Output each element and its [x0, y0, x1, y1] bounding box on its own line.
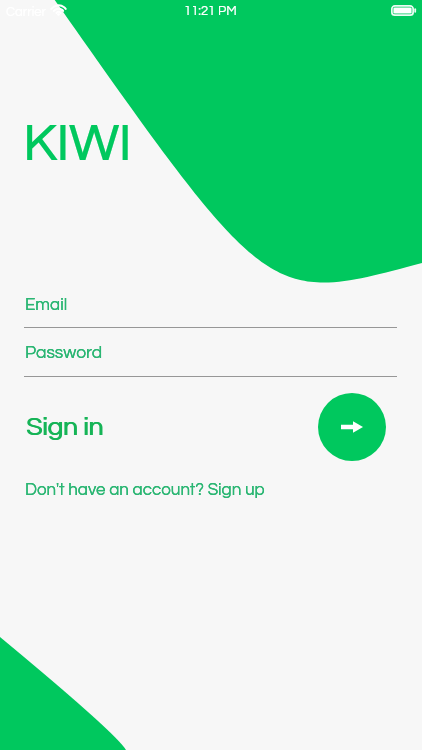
staticText: Carrier: [6, 5, 47, 18]
staticText: Password: [25, 344, 103, 362]
staticText: Don't have an account? Sign up: [25, 481, 265, 499]
staticText: Email: [25, 296, 68, 314]
staticText: Password: [25, 344, 103, 362]
button[interactable]: Sign in: [0, 0, 78, 27]
staticText: KIWI: [24, 117, 132, 171]
button[interactable]: Don't have an account? Sign up: [0, 0, 240, 18]
button[interactable]: Sign in: [318, 393, 386, 461]
staticText: KIWI: [23, 117, 131, 171]
staticText: 11:21 PM: [184, 4, 237, 17]
staticText: Sign in: [27, 414, 105, 441]
staticText: Email: [25, 296, 68, 314]
staticText: Sign in: [26, 414, 104, 441]
staticText: Don't have an account? Sign up: [25, 481, 265, 499]
